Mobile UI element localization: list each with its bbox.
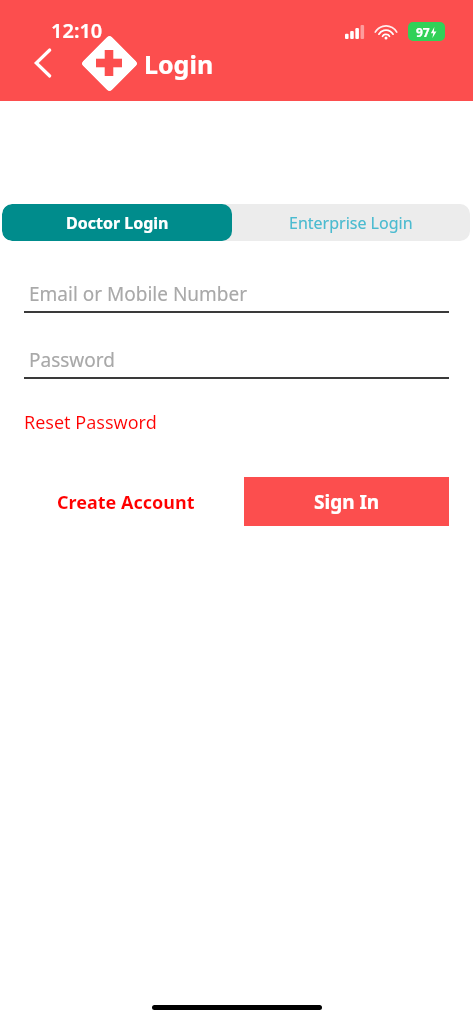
staticText: Login	[144, 47, 214, 81]
staticText: Create Account	[57, 490, 195, 515]
staticText: 97	[416, 24, 430, 40]
staticText: 12:10	[51, 17, 103, 44]
button[interactable]: Back	[22, 42, 64, 84]
button[interactable]: Enterprise Login	[232, 204, 470, 241]
button[interactable]: Create Account	[44, 478, 208, 526]
staticText: Enterprise Login	[289, 212, 413, 234]
staticText: Doctor Login	[66, 212, 169, 234]
staticText: Reset Password	[24, 410, 157, 435]
button[interactable]: Reset Password	[24, 410, 157, 435]
staticText: Email or Mobile Number	[29, 281, 248, 307]
button[interactable]: Sign In	[244, 477, 449, 526]
staticText: Password	[29, 347, 115, 373]
button[interactable]: Doctor Login	[2, 204, 232, 241]
staticText: Sign In	[314, 489, 380, 515]
